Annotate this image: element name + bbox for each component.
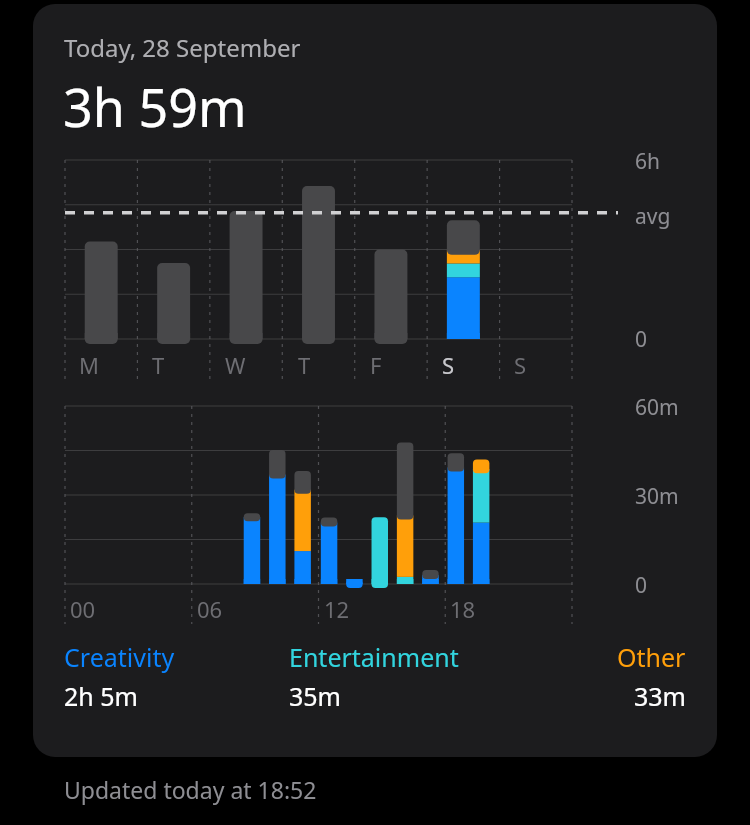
staticText: Other: [617, 640, 686, 674]
staticText: 35m: [289, 679, 341, 713]
staticText: M: [79, 350, 99, 380]
staticText: 06: [197, 594, 223, 624]
staticText: 0: [635, 325, 648, 354]
button[interactable]: Creativity: [64, 640, 289, 713]
staticText: W: [225, 350, 246, 380]
staticText: 2h 5m: [64, 679, 138, 713]
staticText: 33m: [634, 679, 686, 713]
button[interactable]: Today, 28 September: [33, 4, 717, 757]
staticText: Entertainment: [289, 640, 459, 674]
staticText: Today, 28 September: [64, 31, 301, 64]
staticText: 3h 59m: [63, 71, 247, 142]
button[interactable]: Entertainment: [289, 640, 547, 713]
button[interactable]: Other: [547, 640, 686, 713]
staticText: S: [442, 350, 455, 380]
staticText: S: [514, 350, 527, 380]
staticText: T: [152, 350, 165, 380]
staticText: 60m: [635, 393, 679, 422]
staticText: 30m: [635, 482, 679, 511]
staticText: 0: [635, 571, 648, 600]
staticText: 6h: [635, 147, 660, 176]
staticText: F: [370, 350, 382, 380]
staticText: T: [298, 350, 311, 380]
staticText: 00: [70, 594, 96, 624]
staticText: Updated today at 18:52: [64, 774, 317, 805]
staticText: Creativity: [64, 640, 175, 674]
staticText: 12: [324, 594, 350, 624]
staticText: 18: [450, 594, 476, 624]
staticText: avg: [635, 202, 671, 231]
